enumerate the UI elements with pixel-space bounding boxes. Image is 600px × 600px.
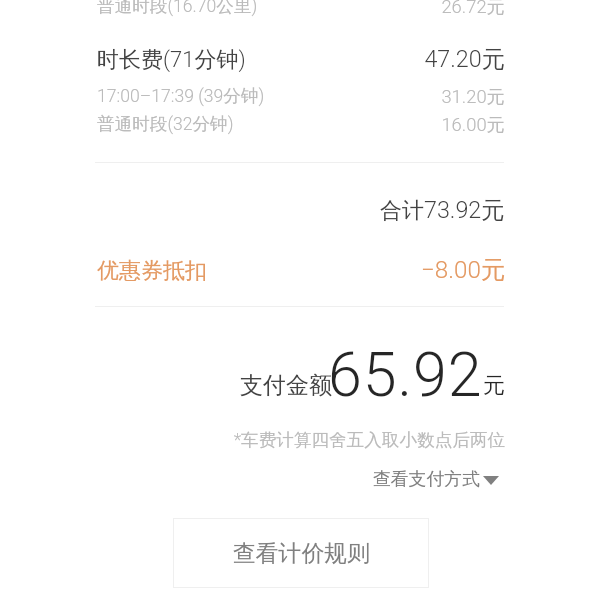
staticText: 26.72元 (105, 0, 505, 18)
staticText: 65.92 (328, 339, 483, 410)
staticText: −8.00元 (105, 255, 505, 285)
staticText: 普通时段(16.70公里) (97, 0, 258, 17)
staticText: 31.20元 (105, 85, 505, 108)
staticText: 73.92元 (424, 196, 505, 225)
staticText: 17:00–17:39 (39分钟) (97, 85, 265, 107)
staticText: 优惠券抵扣 (97, 257, 207, 285)
staticText: 查看计价规则 (233, 539, 370, 568)
staticText: 47.20元 (105, 45, 505, 74)
staticText: 时长费(71分钟) (97, 46, 246, 74)
staticText: 元 (483, 372, 505, 400)
staticText: 合计 (380, 197, 424, 225)
staticText: 支付金额 (240, 371, 332, 400)
button[interactable]: 查看计价规则 (173, 518, 429, 588)
staticText: 查看支付方式 (373, 468, 480, 490)
staticText: 16.00元 (105, 113, 505, 136)
button[interactable]: 查看支付方式 (371, 466, 501, 492)
staticText: 普通时段(32分钟) (97, 113, 234, 135)
staticText: *车费计算四舍五入取小数点后两位 (105, 429, 505, 451)
